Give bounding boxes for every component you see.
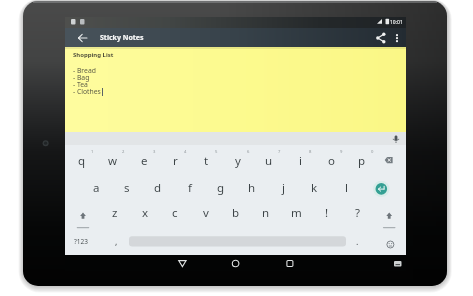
button[interactable]: a xyxy=(85,180,107,196)
staticText: ! xyxy=(325,205,329,221)
staticText: i xyxy=(299,153,302,169)
staticText: w xyxy=(108,153,118,169)
staticText: b xyxy=(232,205,240,221)
staticText: , xyxy=(115,235,118,247)
staticText: 5 xyxy=(215,149,218,155)
button[interactable]: g xyxy=(210,180,232,196)
button[interactable]: e xyxy=(133,153,155,169)
staticText: j xyxy=(282,180,285,196)
button[interactable]: o xyxy=(320,153,342,169)
staticText: n xyxy=(262,205,270,221)
staticText: 2 xyxy=(122,149,125,155)
staticText: 3 xyxy=(153,149,156,155)
staticText: Shopping List xyxy=(73,51,114,59)
staticText: . xyxy=(356,235,359,247)
button[interactable]: z xyxy=(104,205,126,221)
staticText: 9 xyxy=(340,149,343,155)
staticText: y xyxy=(235,153,241,169)
button[interactable]: p xyxy=(351,153,373,169)
button[interactable]: h xyxy=(241,180,263,196)
button[interactable]: l xyxy=(335,180,357,196)
button[interactable]: b xyxy=(225,205,247,221)
button[interactable]: Shopping List xyxy=(65,47,406,132)
button[interactable]: j xyxy=(272,180,294,196)
staticText: z xyxy=(112,205,118,221)
staticText: v xyxy=(203,205,209,221)
staticText: a xyxy=(93,180,100,196)
button[interactable]: , xyxy=(105,233,127,249)
button[interactable]: t xyxy=(195,153,217,169)
staticText: u xyxy=(265,153,273,169)
staticText: 7 xyxy=(278,149,281,155)
button[interactable]: k xyxy=(303,180,325,196)
button[interactable] xyxy=(292,255,406,271)
button[interactable]: y xyxy=(227,153,249,169)
staticText: d xyxy=(154,180,162,196)
staticText: 1 xyxy=(91,149,94,155)
staticText: r xyxy=(173,153,178,169)
staticText: 10:01 xyxy=(390,19,403,26)
button[interactable]: ?123 xyxy=(70,233,92,249)
button[interactable]: f xyxy=(179,180,201,196)
button[interactable] xyxy=(76,31,90,45)
staticText: f xyxy=(188,180,192,196)
staticText: t xyxy=(204,153,209,169)
staticText: ?123 xyxy=(74,237,88,246)
staticText: 6 xyxy=(247,149,250,155)
button[interactable]: ? xyxy=(346,205,368,221)
staticText: Sticky Notes xyxy=(100,33,144,43)
button[interactable]: c xyxy=(164,205,186,221)
staticText: s xyxy=(124,180,130,196)
staticText: 8 xyxy=(309,149,312,155)
staticText: g xyxy=(217,180,225,196)
button[interactable]: x xyxy=(134,205,156,221)
button[interactable]: n xyxy=(255,205,277,221)
staticText: e xyxy=(141,153,148,169)
button[interactable]: i xyxy=(289,153,311,169)
button[interactable]: q xyxy=(71,153,93,169)
staticText: h xyxy=(248,180,256,196)
staticText: k xyxy=(311,180,318,196)
staticText: 0 xyxy=(371,149,374,155)
staticText: m xyxy=(291,205,302,221)
staticText: ? xyxy=(355,205,360,221)
button[interactable]: d xyxy=(147,180,169,196)
staticText: o xyxy=(328,153,335,169)
button[interactable]: w xyxy=(102,153,124,169)
staticText: q xyxy=(78,153,86,169)
staticText: 4 xyxy=(184,149,187,155)
button[interactable] xyxy=(392,33,402,43)
staticText: p xyxy=(358,153,366,169)
button[interactable]: r xyxy=(164,153,186,169)
button[interactable]: u xyxy=(258,153,280,169)
button[interactable]: s xyxy=(116,180,138,196)
button[interactable]: ! xyxy=(316,205,338,221)
staticText: x xyxy=(142,205,149,221)
staticText: c xyxy=(172,205,178,221)
button[interactable]: v xyxy=(195,205,217,221)
staticText: l xyxy=(345,180,348,196)
button[interactable] xyxy=(178,255,292,271)
staticText: - Bread - Bag - Tea - Clothes xyxy=(73,66,101,96)
button[interactable]: . xyxy=(346,233,368,249)
button[interactable] xyxy=(374,31,388,45)
button[interactable]: m xyxy=(285,205,307,221)
